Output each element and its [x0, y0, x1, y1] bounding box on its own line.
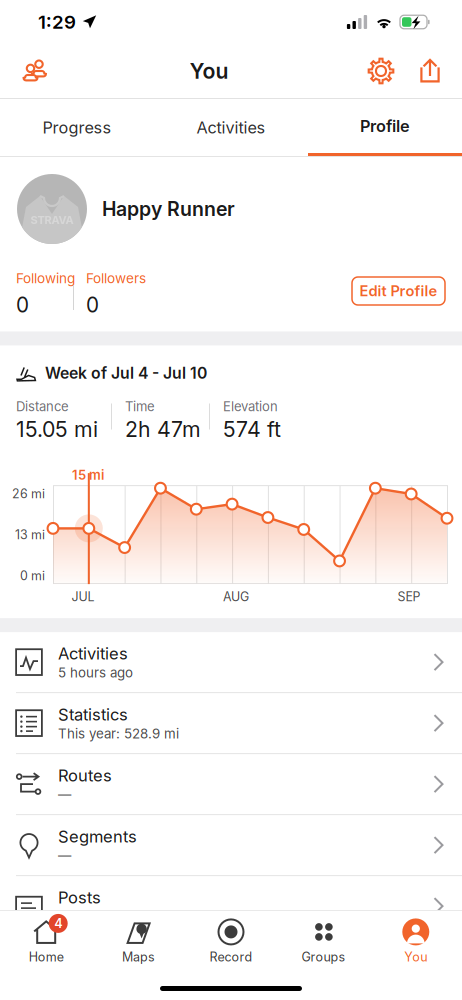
staticText: — [58, 848, 71, 864]
staticText: AUG [223, 589, 249, 604]
button[interactable]: Posts [0, 876, 462, 936]
staticText: You [404, 949, 427, 965]
staticText: This year: 528.9 mi [58, 726, 179, 742]
button[interactable]: Settings [356, 44, 406, 98]
button[interactable]: Activities [154, 99, 308, 156]
button[interactable]: Edit Profile [352, 277, 445, 305]
staticText: Elevation [223, 398, 278, 414]
staticText: 26 mi [12, 486, 45, 501]
button[interactable]: You [370, 916, 462, 966]
staticText: Maps [122, 949, 155, 965]
staticText: Routes [58, 766, 112, 786]
staticText: 15 mi [72, 467, 104, 483]
staticText: 574 ft [223, 416, 281, 442]
staticText: 0 [86, 292, 99, 317]
button[interactable]: Groups [277, 916, 370, 966]
button[interactable]: 4 [0, 916, 92, 966]
staticText: 5 hours ago [58, 665, 133, 681]
staticText: Time [125, 398, 155, 414]
button[interactable]: Find friends [8, 44, 62, 98]
staticText: 0 [16, 292, 29, 317]
staticText: Record [209, 949, 252, 965]
staticText: Groups [301, 949, 345, 965]
staticText: JUL [71, 589, 94, 604]
staticText: Profile [360, 116, 410, 136]
staticText: You [189, 58, 228, 84]
staticText: Edit Profile [359, 282, 437, 300]
button[interactable]: Segments [0, 815, 462, 875]
staticText: 2h 47m [125, 416, 201, 442]
staticText: Home [29, 949, 64, 965]
button[interactable]: Record [185, 916, 277, 966]
button[interactable]: Routes [0, 754, 462, 814]
staticText: STRAVA [30, 213, 73, 227]
staticText: 0 mi [20, 568, 45, 583]
staticText: Statistics [58, 705, 128, 725]
staticText: Activities [196, 118, 265, 137]
button[interactable]: Profile [308, 99, 462, 156]
staticText: 4 [54, 916, 62, 931]
staticText: Posts [58, 888, 101, 908]
button[interactable]: Activities [0, 632, 462, 692]
staticText: 1:29 [38, 11, 76, 33]
staticText: Distance [16, 398, 69, 414]
staticText: 13 mi [15, 527, 45, 542]
staticText: 15.05 mi [16, 416, 98, 442]
button[interactable]: Maps [92, 916, 185, 966]
staticText: SEP [397, 589, 420, 604]
staticText: — [58, 787, 71, 803]
staticText: Following [16, 270, 75, 286]
button[interactable]: Share [406, 44, 454, 98]
staticText: Happy Runner [102, 197, 235, 221]
button[interactable]: Progress [0, 99, 154, 156]
button[interactable]: Statistics [0, 693, 462, 753]
staticText: Progress [42, 118, 111, 137]
staticText: Segments [58, 827, 137, 847]
staticText: Followers [86, 270, 146, 286]
staticText: Activities [58, 644, 128, 664]
staticText: Week of Jul 4 - Jul 10 [45, 363, 207, 382]
